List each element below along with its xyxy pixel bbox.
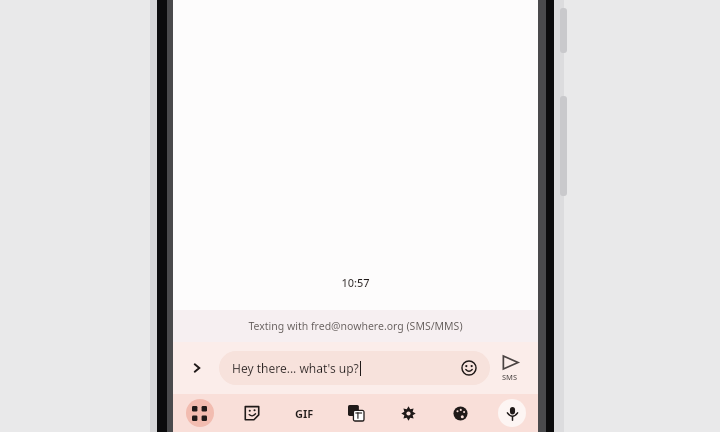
button[interactable]: Voice input <box>486 394 538 432</box>
button[interactable]: Apps <box>173 394 226 432</box>
button[interactable]: Settings <box>382 394 434 432</box>
staticText: 10:57 <box>341 275 370 290</box>
staticText: GIF <box>295 406 314 421</box>
button[interactable]: Hey there... what's up? <box>219 351 490 385</box>
button[interactable]: Send SMS <box>490 342 530 394</box>
button[interactable]: GIF <box>278 394 330 432</box>
button[interactable]: Themes <box>434 394 486 432</box>
button[interactable]: Stickers <box>226 394 278 432</box>
staticText: Texting with fred@nowhere.org (SMS/MMS) <box>248 319 463 333</box>
staticText: Hey there... what's up? <box>232 360 359 376</box>
staticText: SMS <box>502 372 518 382</box>
button[interactable]: Translate <box>330 394 382 432</box>
button[interactable]: Expand options <box>181 352 213 384</box>
button[interactable]: Emoji <box>456 355 482 381</box>
